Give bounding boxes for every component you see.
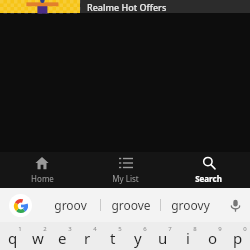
button[interactable]: 4	[75, 222, 100, 250]
button[interactable]: 5	[100, 222, 125, 250]
staticText: 4	[93, 225, 97, 233]
staticText: Search	[195, 173, 222, 184]
staticText: 9	[218, 225, 222, 233]
staticText: 5	[118, 225, 122, 233]
staticText: 3	[68, 225, 72, 233]
button[interactable]: Voice input	[220, 188, 250, 222]
staticText: y	[134, 228, 142, 248]
staticText: groove	[111, 197, 151, 213]
staticText: w	[32, 228, 44, 248]
staticText: groovy	[171, 197, 210, 213]
button[interactable]: 0	[225, 222, 250, 250]
button[interactable]: groovy	[161, 188, 220, 222]
button[interactable]: 6	[125, 222, 150, 250]
button[interactable]: groov	[40, 188, 100, 222]
staticText: u	[158, 228, 168, 248]
staticText: e	[58, 228, 67, 248]
button[interactable]: Google	[9, 194, 32, 217]
button[interactable]: 3	[50, 222, 75, 250]
button[interactable]: 1	[0, 222, 25, 250]
staticText: o	[208, 228, 218, 248]
button[interactable]: 8	[175, 222, 200, 250]
staticText: Home	[31, 173, 54, 184]
staticText: p	[233, 228, 243, 248]
staticText: q	[8, 228, 18, 248]
staticText: My List	[112, 173, 139, 184]
button[interactable]: 9	[200, 222, 225, 250]
button[interactable]: 7	[150, 222, 175, 250]
staticText: 6	[143, 225, 147, 233]
staticText: groov	[54, 197, 87, 213]
button[interactable]: Home	[0, 152, 84, 188]
button[interactable]: 2	[25, 222, 50, 250]
staticText: 8	[193, 225, 197, 233]
button[interactable]: Search	[167, 152, 250, 188]
staticText: 7	[168, 225, 172, 233]
staticText: 2	[43, 225, 47, 233]
staticText: t	[110, 228, 116, 248]
staticText: i	[186, 228, 190, 248]
button[interactable]: groove	[101, 188, 160, 222]
staticText: 1	[18, 225, 22, 233]
button[interactable]: Realme Hot Offers	[0, 0, 250, 13]
button[interactable]: My List	[84, 152, 167, 188]
staticText: r	[84, 228, 91, 248]
staticText: 0	[243, 225, 247, 233]
staticText: Realme Hot Offers	[87, 1, 167, 13]
